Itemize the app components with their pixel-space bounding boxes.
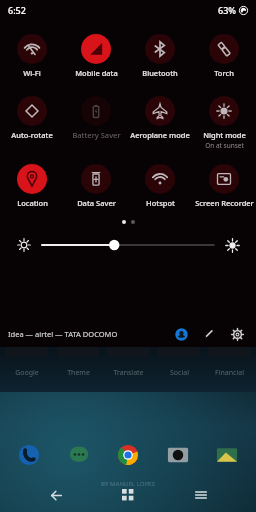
staticText: Screen Recorder [195,198,254,208]
button[interactable]: Menu [184,478,218,512]
button[interactable]: Torch [192,32,256,78]
staticText: Translate [113,368,144,378]
staticText: Idea — airtel — TATA DOCOMO [8,329,118,339]
staticText: On at sunset [205,141,244,150]
button[interactable]: Auto-rotate [0,94,64,140]
button[interactable]: User [170,323,192,345]
staticText: Wi-Fi [23,68,41,78]
button[interactable]: Chrome [113,440,143,470]
staticText: Financial [215,368,244,378]
button[interactable]: Hotspot [128,162,192,208]
button[interactable]: Screen Recorder [192,162,256,208]
staticText: Google [15,368,39,378]
button[interactable]: Data Saver [64,162,128,208]
button[interactable]: Mobile data [64,32,128,78]
staticText: Night mode [203,130,246,140]
staticText: Hotspot [146,198,175,208]
staticText: Social [170,368,189,378]
button[interactable]: Brightness [42,235,214,255]
button[interactable]: Gallery [212,440,242,470]
staticText: Aeroplane mode [130,130,190,140]
staticText: Theme [67,368,90,378]
button[interactable]: Recent apps [111,478,145,512]
staticText: Battery Saver [72,130,121,140]
staticText: 6:52 [8,4,26,16]
staticText: Location [17,198,48,208]
button[interactable]: Battery Saver [64,94,128,140]
staticText: Auto-rotate [11,130,53,140]
button[interactable]: Settings [226,323,248,345]
button[interactable]: Decrease brightness [14,235,34,255]
button[interactable]: Camera [163,440,193,470]
staticText: 63% [218,4,236,16]
button[interactable]: Location [0,162,64,208]
button[interactable]: Phone [14,440,44,470]
staticText: Mobile data [75,68,118,78]
staticText: Bluetooth [142,68,178,78]
button[interactable]: Back [39,478,73,512]
staticText: Torch [214,68,234,78]
staticText: BY MANUEL LOPEZ [101,480,155,488]
button[interactable]: Bluetooth [128,32,192,78]
button[interactable]: Edit tiles [198,323,220,345]
button[interactable]: Aeroplane mode [128,94,192,140]
button[interactable]: Messages [64,440,94,470]
button[interactable]: Increase brightness [222,235,242,255]
button[interactable]: Night mode [192,94,256,150]
button[interactable]: Wi-Fi [0,32,64,78]
staticText: Data Saver [77,198,116,208]
